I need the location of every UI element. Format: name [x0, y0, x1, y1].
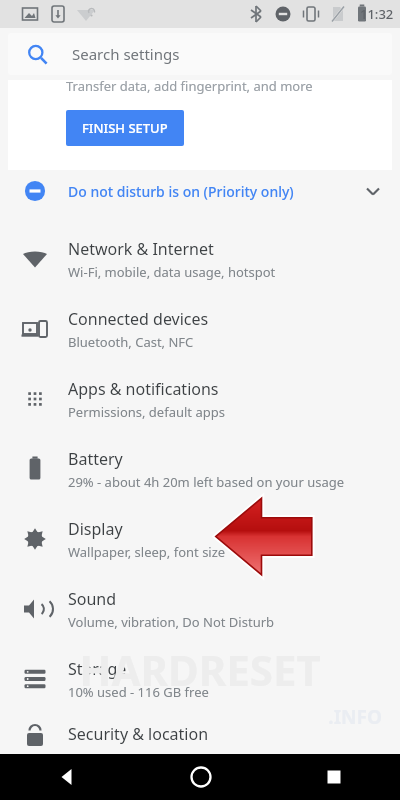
button[interactable]: Storage: [0, 644, 400, 714]
staticText: Do not disturb is on (Priority only): [68, 182, 294, 201]
staticText: Transfer data, add fingerprint, and more: [66, 77, 313, 95]
staticText: Bluetooth, Cast, NFC: [68, 333, 194, 351]
staticText: Network & Internet: [68, 238, 214, 260]
button[interactable]: FINISH SETUP: [66, 110, 184, 146]
button[interactable]: Search settings: [8, 33, 392, 75]
staticText: Wi-Fi, mobile, data usage, hotspot: [68, 263, 276, 281]
staticText: 10% used - 116 GB free: [68, 683, 209, 701]
staticText: Wallpaper, sleep, font size: [68, 543, 226, 561]
staticText: .INFO: [0, 704, 382, 730]
staticText: Battery: [68, 448, 123, 470]
button[interactable]: Network & Internet: [0, 224, 400, 294]
button[interactable]: Security & location: [0, 714, 400, 754]
staticText: HARDRESET: [0, 641, 400, 698]
staticText: Volume, vibration, Do Not Disturb: [68, 613, 275, 631]
button[interactable]: Do not disturb is on (Priority only): [0, 170, 400, 212]
staticText: Display: [68, 518, 123, 540]
staticText: 29% - about 4h 20m left based on your us…: [68, 473, 345, 491]
button[interactable]: Sound: [0, 574, 400, 644]
staticText: Storage: [68, 658, 127, 680]
other: Expand: [363, 181, 383, 201]
button[interactable]: Back: [0, 754, 134, 800]
staticText: Security & location: [68, 723, 209, 745]
staticText: FINISH SETUP: [82, 119, 168, 137]
staticText: Search settings: [72, 44, 180, 64]
staticText: Permissions, default apps: [68, 403, 225, 421]
button[interactable]: Battery: [0, 434, 400, 504]
staticText: Apps & notifications: [68, 378, 219, 400]
button[interactable]: Recent apps: [267, 754, 400, 800]
staticText: 11:32: [360, 5, 394, 23]
button[interactable]: Connected devices: [0, 294, 400, 364]
staticText: Connected devices: [68, 308, 209, 330]
button[interactable]: Apps & notifications: [0, 364, 400, 434]
button[interactable]: Display: [0, 504, 400, 574]
button[interactable]: Home: [134, 754, 267, 800]
staticText: Sound: [68, 588, 117, 610]
